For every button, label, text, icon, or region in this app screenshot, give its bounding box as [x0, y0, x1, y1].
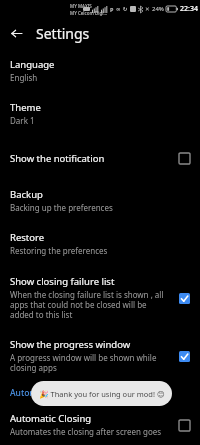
staticText: MY MAXIS	[70, 3, 92, 9]
staticText: Backup	[10, 188, 43, 201]
button[interactable]: Language	[0, 51, 200, 90]
staticText: 🎉 Thank you for using our mod! 😊	[39, 389, 165, 399]
staticText: P	[110, 6, 114, 13]
staticText: When the closing failure list is shown ,…	[10, 289, 168, 320]
staticText: Automatic Closing	[10, 387, 85, 399]
staticText: Restoring the preferences	[10, 245, 108, 256]
staticText: Show the notification	[10, 152, 105, 165]
button[interactable]: Unchecked	[172, 413, 196, 437]
staticText: 24%	[152, 5, 164, 13]
staticText: Language	[10, 58, 55, 71]
button[interactable]: Checked	[172, 286, 196, 310]
staticText: MY Celcom Digi...	[70, 10, 108, 16]
staticText: A progress window will be shown while cl…	[10, 352, 168, 373]
button[interactable]: Show the progress window	[0, 331, 200, 380]
staticText: 22:34	[180, 4, 198, 14]
staticText: ✕	[145, 6, 150, 12]
button[interactable]: Theme	[0, 94, 200, 133]
button[interactable]: Show the notification	[0, 139, 200, 177]
staticText: Restore	[10, 231, 45, 244]
button[interactable]: Unchecked	[172, 146, 196, 170]
staticText: Automatic Closing	[10, 412, 92, 425]
staticText: Settings	[36, 24, 90, 43]
staticText: ↻	[123, 6, 128, 12]
staticText: Show closing failure list	[10, 275, 115, 288]
button[interactable]: Show closing failure list	[0, 268, 200, 327]
staticText: Theme	[10, 101, 41, 114]
button[interactable]: Backup	[0, 181, 200, 220]
button[interactable]: Checked	[172, 344, 196, 368]
staticText: Automates the closing after screen goes …	[10, 426, 168, 438]
button[interactable]: Back	[6, 23, 26, 43]
button[interactable]: 🎉 Thank you for using our mod! 😊	[31, 381, 172, 406]
staticText: English	[10, 72, 38, 83]
staticText: Dark 1	[10, 115, 35, 126]
button[interactable]: Automatic Closing	[0, 405, 200, 445]
button[interactable]: Restore	[0, 224, 200, 263]
staticText: Backing up the preferences	[10, 202, 113, 213]
staticText: Show the progress window	[10, 338, 131, 351]
staticText: ∞	[116, 6, 121, 12]
